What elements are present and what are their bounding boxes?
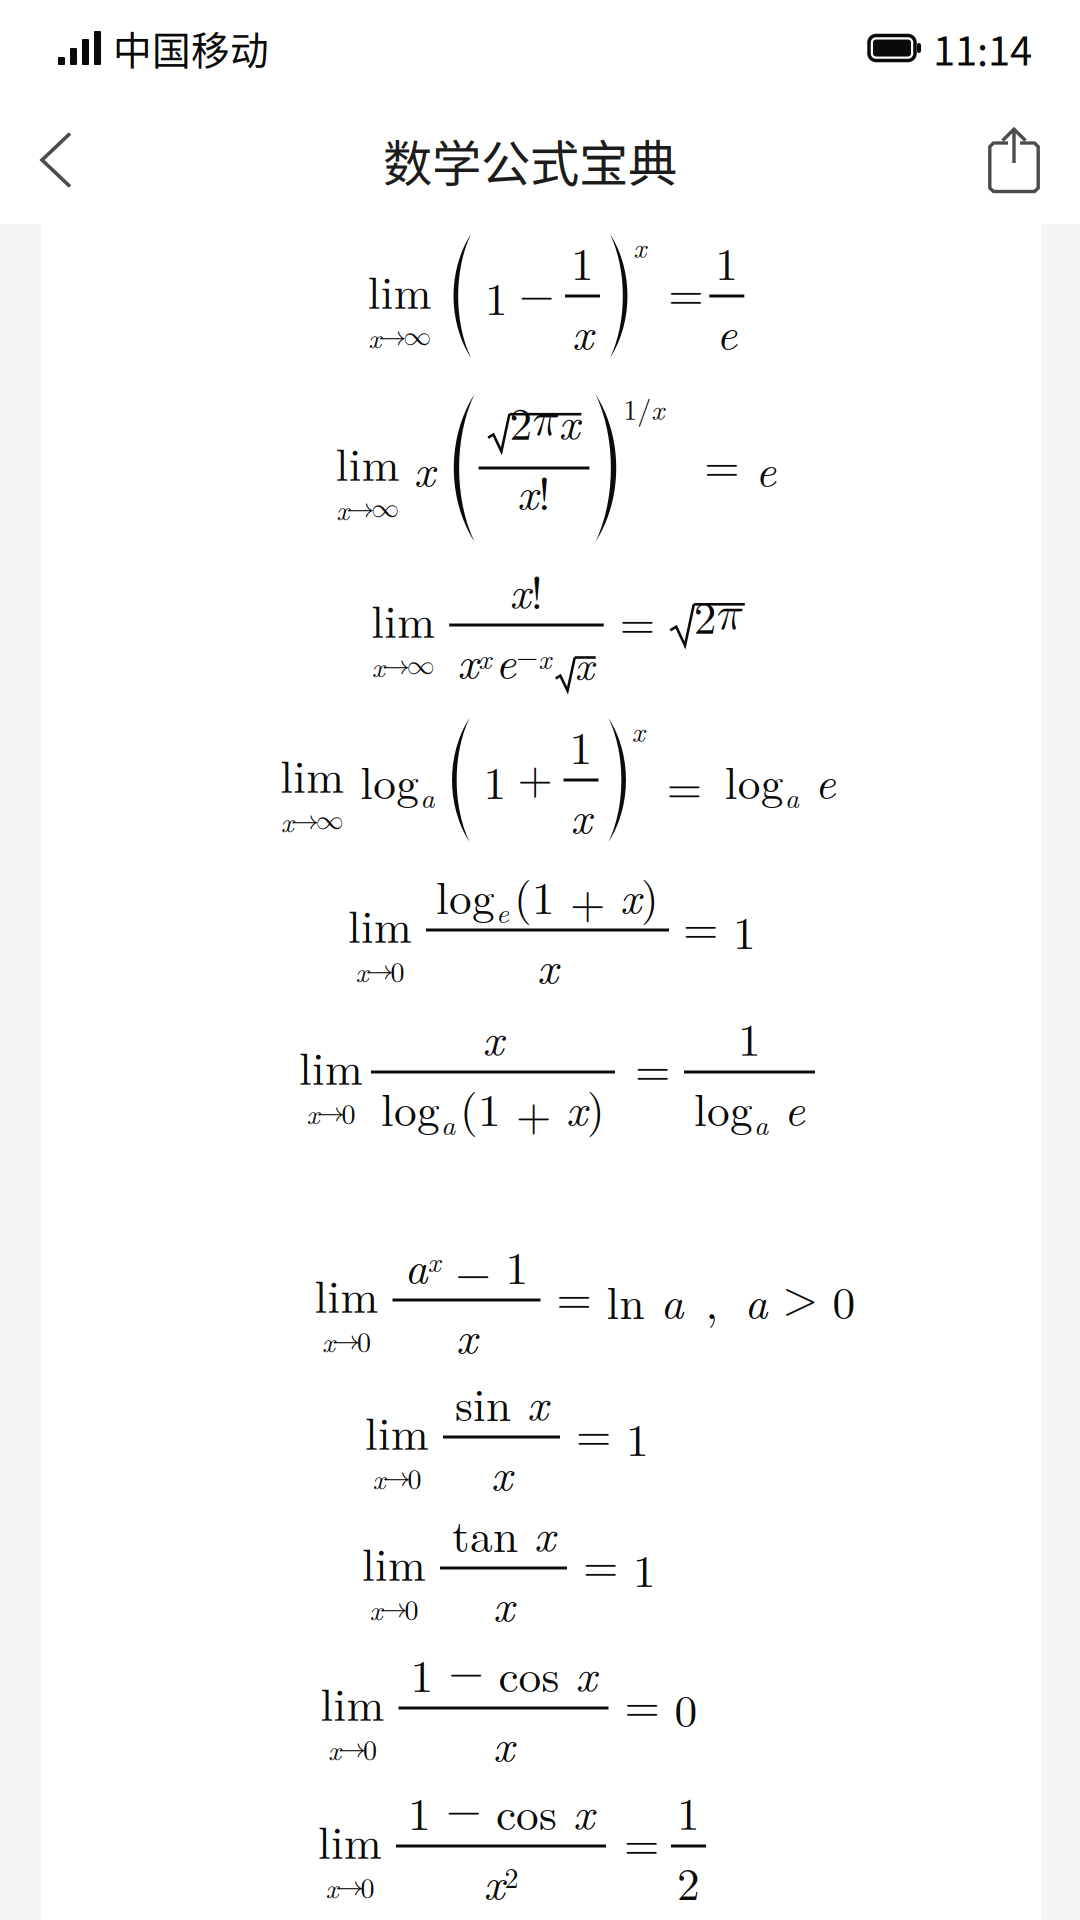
staticText: ∞ [371, 495, 399, 523]
staticText: lim [362, 1529, 426, 1594]
staticText: x [328, 1729, 341, 1768]
staticText: = [667, 767, 702, 812]
staticText: lim [365, 1398, 429, 1463]
staticText: 1 [410, 1641, 433, 1705]
button[interactable]: Back [0, 96, 102, 224]
staticText: x [509, 558, 530, 622]
staticText: 0 [363, 1729, 377, 1768]
staticText: x [517, 459, 538, 523]
staticText: 1 [485, 264, 508, 328]
staticText: a [754, 1104, 768, 1143]
staticText: 0 [407, 1458, 421, 1497]
staticText: e [739, 436, 776, 500]
staticText: x [633, 226, 646, 266]
staticText: x [557, 1779, 594, 1843]
staticText: → [335, 1873, 363, 1901]
staticText: → [332, 1327, 360, 1355]
staticText: 2 [509, 389, 532, 453]
staticText: → [378, 323, 406, 351]
staticText: ln [591, 1268, 644, 1332]
staticText: a [420, 776, 434, 816]
staticText: 0 [341, 1093, 355, 1132]
staticText: 1 [618, 1536, 656, 1600]
staticText: 1 [718, 898, 756, 962]
staticText: cos [496, 1779, 557, 1843]
staticText: x [372, 1458, 385, 1497]
staticText: tan [452, 1501, 518, 1565]
staticText: − [516, 643, 538, 671]
staticText: log [694, 1075, 753, 1139]
staticText: 11:14 [933, 19, 1032, 77]
staticText: e [496, 891, 509, 931]
staticText: e [495, 628, 516, 692]
staticText: lim [280, 742, 344, 806]
staticText: − [519, 273, 554, 319]
staticText: 1 [408, 1779, 431, 1843]
staticText: ! [530, 558, 543, 622]
staticText: − [433, 1650, 498, 1696]
staticText: e [716, 299, 737, 363]
staticText: x [456, 1303, 477, 1367]
staticText: log [381, 1075, 440, 1139]
staticText: log [436, 863, 495, 927]
staticText: (1 [460, 1075, 501, 1139]
staticText: 2 [504, 1856, 518, 1896]
staticText: e [768, 1075, 805, 1139]
staticText: − [440, 1252, 505, 1297]
staticText: + [555, 882, 620, 927]
staticText: 1 [505, 1233, 528, 1297]
staticText: sin [455, 1370, 511, 1434]
staticText: x [511, 1370, 548, 1434]
staticText: x [538, 638, 551, 677]
staticText: x [570, 783, 591, 847]
staticText: x [325, 1867, 338, 1906]
staticText: + [501, 1094, 566, 1139]
staticText: → [382, 1464, 410, 1492]
staticText: lim [314, 1261, 378, 1326]
staticText: 数学公式宝典 [383, 124, 677, 196]
staticText: 1 [677, 1779, 700, 1843]
staticText: a [644, 1268, 683, 1332]
staticText: → [316, 1099, 344, 1127]
staticText: x [427, 1240, 440, 1280]
staticText: → [338, 1735, 366, 1763]
staticText: x [336, 489, 349, 528]
staticText: ∞ [403, 323, 431, 351]
staticText: x [306, 1093, 319, 1132]
staticText: a [744, 1268, 767, 1332]
staticText: 中国移动 [113, 20, 269, 76]
staticText: 1 [715, 229, 738, 293]
staticText: 0 [832, 1268, 855, 1332]
staticText: x [620, 863, 641, 927]
staticText: x [558, 389, 579, 453]
staticText: a [785, 776, 799, 816]
staticText: ∞ [316, 807, 344, 835]
staticText: = [624, 1685, 659, 1731]
staticText: 𝜋 [717, 592, 743, 637]
staticText: = [668, 273, 703, 319]
staticText: x [457, 628, 478, 692]
staticText: 0 [360, 1867, 374, 1906]
staticText: 0 [357, 1321, 371, 1360]
staticText: 1 [611, 1405, 649, 1469]
staticText: ) [641, 863, 659, 927]
staticText: (1 [514, 863, 555, 927]
staticText: x [651, 388, 664, 428]
staticText: x [632, 710, 645, 750]
staticText: = [624, 1823, 659, 1869]
staticText: a [404, 1233, 427, 1297]
staticText: → [379, 1595, 407, 1623]
staticText: = [583, 1545, 618, 1591]
staticText: cos [498, 1641, 559, 1705]
staticText: > [767, 1277, 832, 1323]
staticText: 1/ [623, 388, 651, 428]
button[interactable]: Share [958, 96, 1080, 224]
staticText: 1 [569, 713, 592, 777]
staticText: 2 [677, 1849, 700, 1913]
staticText: − [431, 1788, 496, 1834]
staticText: 1 [738, 1005, 761, 1069]
staticText: = [576, 1414, 611, 1460]
staticText: x [414, 436, 435, 500]
staticText: , [705, 1268, 718, 1332]
